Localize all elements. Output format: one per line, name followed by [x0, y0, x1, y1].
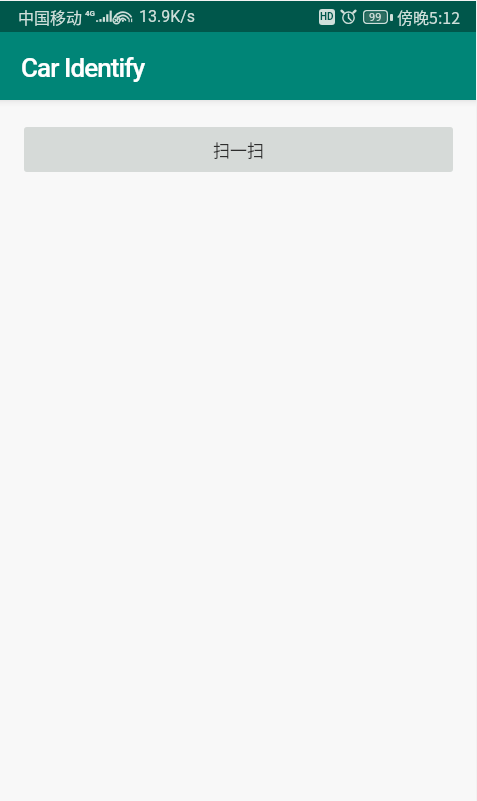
other: HD voice — [319, 9, 335, 25]
staticText: 傍晚5:12 — [397, 5, 461, 28]
button[interactable]: 扫一扫 — [24, 127, 453, 172]
staticText: 中国移动 — [18, 5, 83, 28]
other: Mobile signal strength — [96, 9, 113, 25]
other: Wi-Fi connected — [113, 9, 134, 25]
staticText: 扫一扫 — [213, 137, 264, 162]
staticText: 99 — [369, 11, 382, 24]
staticText: 13.9K/s — [139, 7, 196, 26]
staticText: 4G — [85, 9, 96, 18]
other: 4G network — [85, 9, 96, 25]
staticText: Car Identify — [21, 53, 145, 83]
other: Battery 99 percent — [363, 10, 393, 24]
staticText: HD — [320, 11, 334, 23]
other: Alarm set — [340, 8, 357, 25]
